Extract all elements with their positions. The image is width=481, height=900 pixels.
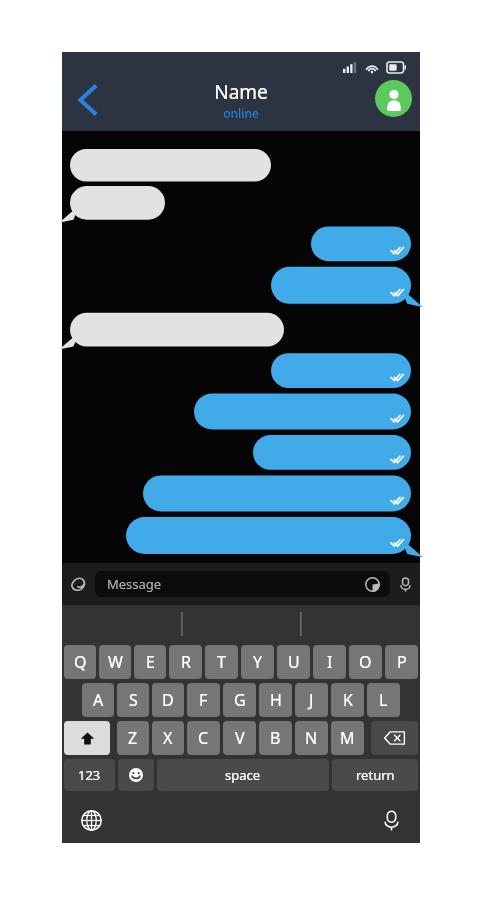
staticText: B [270,727,281,749]
button[interactable]: Voice message [390,563,420,605]
button[interactable]: M [331,721,364,755]
staticText: F [199,689,208,711]
staticText: T [217,651,226,673]
button[interactable]: O [349,645,382,679]
staticText: online [223,105,259,121]
staticText: O [359,651,372,673]
button[interactable]: Emoji [118,759,154,791]
button[interactable]: G [223,683,256,717]
button[interactable]: I [313,645,346,679]
staticText: U [288,651,300,673]
button[interactable]: Y [241,645,274,679]
staticText: J [309,689,314,711]
button[interactable]: J [295,683,328,717]
button[interactable]: X [152,721,184,755]
staticText: C [198,727,209,749]
button[interactable]: A [82,683,114,717]
button[interactable]: space [157,759,329,791]
button[interactable]: Backspace [371,721,418,755]
button[interactable]: Dictate [374,803,408,837]
button[interactable]: Shift [64,721,110,755]
button[interactable]: P [385,645,418,679]
button[interactable]: Attach [62,563,95,605]
button[interactable]: 123 [64,759,115,791]
staticText: K [343,689,353,711]
staticText: N [305,727,318,749]
staticText: V [235,727,245,749]
button[interactable]: V [223,721,256,755]
staticText: Q [74,651,87,673]
staticText: Message [107,575,162,593]
button[interactable]: Z [117,721,149,755]
staticText: R [181,651,191,673]
button[interactable]: W [99,645,131,679]
button[interactable]: S [117,683,149,717]
button[interactable]: Message [95,571,390,597]
button[interactable]: Change keyboard language [74,803,108,837]
button[interactable]: Stickers [362,574,382,594]
button[interactable]: N [295,721,328,755]
staticText: D [162,689,174,711]
button[interactable]: Back [68,81,106,119]
button[interactable]: C [187,721,220,755]
button[interactable]: U [277,645,310,679]
staticText: space [225,766,261,784]
staticText: M [340,727,355,749]
staticText: Name [214,79,268,105]
button[interactable]: K [331,683,364,717]
button[interactable]: E [134,645,166,679]
staticText: Y [253,651,263,673]
button[interactable]: H [259,683,292,717]
button[interactable]: Name [214,79,268,121]
staticText: Z [128,727,138,749]
button[interactable]: D [152,683,184,717]
button[interactable]: B [259,721,292,755]
staticText: G [234,689,246,711]
button[interactable]: L [367,683,400,717]
staticText: I [327,651,333,673]
button[interactable]: Contact profile [375,80,412,117]
staticText: S [129,689,138,711]
button[interactable]: F [187,683,220,717]
staticText: 123 [78,766,101,784]
staticText: W [108,651,123,673]
staticText: P [397,651,407,673]
staticText: L [379,689,388,711]
button[interactable]: T [205,645,238,679]
staticText: A [93,689,104,711]
staticText: H [270,689,282,711]
button[interactable]: return [332,759,418,791]
button[interactable]: Q [64,645,96,679]
staticText: X [163,727,173,749]
staticText: return [356,766,395,784]
button[interactable]: R [169,645,202,679]
staticText: E [146,651,155,673]
